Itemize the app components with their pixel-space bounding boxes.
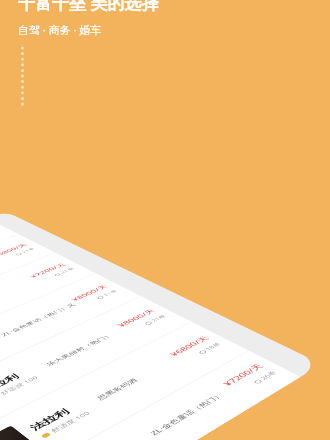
button[interactable]: 法拉利 (0, 273, 141, 428)
staticText: 18单 (203, 341, 223, 352)
button[interactable]: 法拉利 (0, 234, 55, 359)
staticText: 21单 (59, 267, 76, 274)
button[interactable]: 法拉利 (0, 296, 191, 440)
staticText: ¥6800/天 (167, 334, 211, 357)
staticText: ZL·金色童话（热门）又一周… (0, 301, 80, 337)
staticText: 自驾 · 商务 · 婚车 (18, 22, 102, 37)
staticText: 舒适度 100 (49, 410, 93, 434)
staticText: 26单 (258, 370, 279, 381)
staticText: 21单 (150, 314, 168, 323)
staticText: 思黑客码酒 (96, 356, 180, 401)
button[interactable]: 法拉利 (0, 217, 18, 331)
staticText: 法拉利 (0, 373, 22, 395)
staticText: ¥8000/天 (69, 283, 110, 302)
button[interactable]: 法拉利 (0, 253, 95, 391)
staticText: 乐大美丽村（热门） (45, 327, 127, 367)
staticText: 21单 (20, 247, 36, 254)
button[interactable]: 法拉利 (0, 351, 301, 440)
staticText: ¥7200/天 (220, 362, 266, 388)
staticText: ¥7200/天 (28, 262, 67, 279)
staticText: 法拉利 (28, 407, 72, 433)
staticText: ¥8000/天 (115, 307, 158, 328)
staticText: 21单 (102, 289, 119, 297)
staticText: 舒适度 100 (0, 375, 40, 396)
staticText: 千富千垒 美的选择 (18, 0, 159, 14)
button[interactable]: 法拉利 (0, 322, 248, 440)
staticText: ZL·金色童话（热门） (148, 386, 235, 437)
staticText: ¥6800/天 (0, 242, 29, 258)
